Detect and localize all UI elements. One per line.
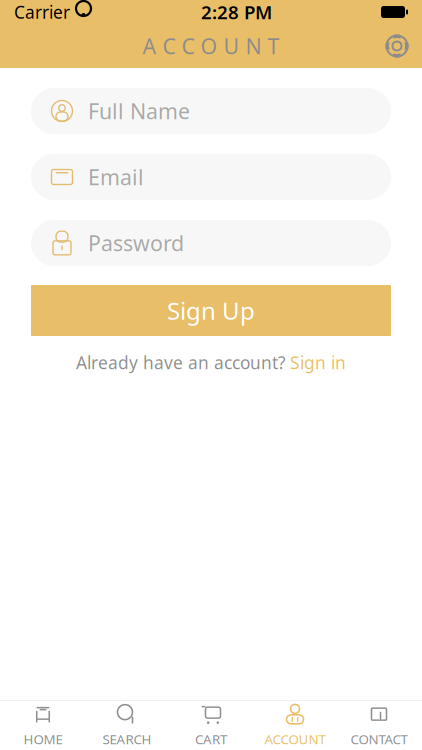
staticText: CONTACT (350, 730, 407, 748)
staticText: Already have an account? (76, 351, 286, 374)
staticText: Full Name (88, 97, 190, 125)
staticText: ACCOUNT (264, 730, 325, 748)
staticText: Email (88, 163, 144, 191)
button[interactable]: CART (169, 701, 253, 749)
button[interactable]: CONTACT (337, 701, 421, 749)
staticText: Sign Up (167, 295, 255, 326)
staticText: Carrier (14, 0, 70, 23)
button[interactable]: Already have an account? (68, 347, 354, 378)
staticText: A C C O U N T (142, 32, 279, 60)
staticText: Password (88, 229, 184, 257)
button[interactable]: SEARCH (85, 701, 169, 749)
staticText: HOME (23, 730, 62, 748)
staticText: 2:28 PM (201, 0, 272, 24)
button[interactable]: Sign Up (31, 285, 391, 336)
button[interactable]: Full Name (31, 88, 391, 134)
button[interactable]: Settings (372, 24, 422, 68)
button[interactable]: Password (31, 220, 391, 266)
staticText: CART (195, 730, 227, 748)
staticText: SEARCH (102, 730, 151, 748)
staticText: Sign in (290, 351, 346, 374)
button[interactable]: HOME (1, 701, 85, 749)
button[interactable]: Email (31, 154, 391, 200)
button[interactable]: ACCOUNT (253, 701, 337, 749)
